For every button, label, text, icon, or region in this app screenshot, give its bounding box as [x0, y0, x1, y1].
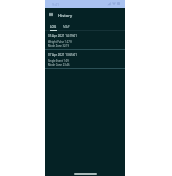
staticText: Mode Zone 32:19 [48, 44, 70, 48]
button[interactable]: 05 Apr 2021 14:19:01 [45, 31, 125, 49]
staticText: 9:41 [52, 2, 60, 7]
button[interactable]: LOG [47, 22, 60, 31]
staticText: LOG [50, 25, 57, 29]
staticText: Single Event 1:09 [48, 59, 69, 63]
staticText: MAP [63, 25, 70, 29]
button[interactable]: Open navigation menu [46, 10, 55, 19]
staticText: 07 Apr 2021 13:55:01 [48, 53, 77, 57]
staticText: 05 Apr 2021 14:19:01 [48, 34, 77, 38]
button[interactable]: 07 Apr 2021 13:55:01 [45, 50, 125, 68]
button[interactable]: MAP [60, 22, 73, 31]
staticText: Weight Pulse 1:27:9 [48, 40, 72, 44]
staticText: History [58, 13, 73, 19]
staticText: Mode Conn 23:46 [48, 63, 70, 67]
